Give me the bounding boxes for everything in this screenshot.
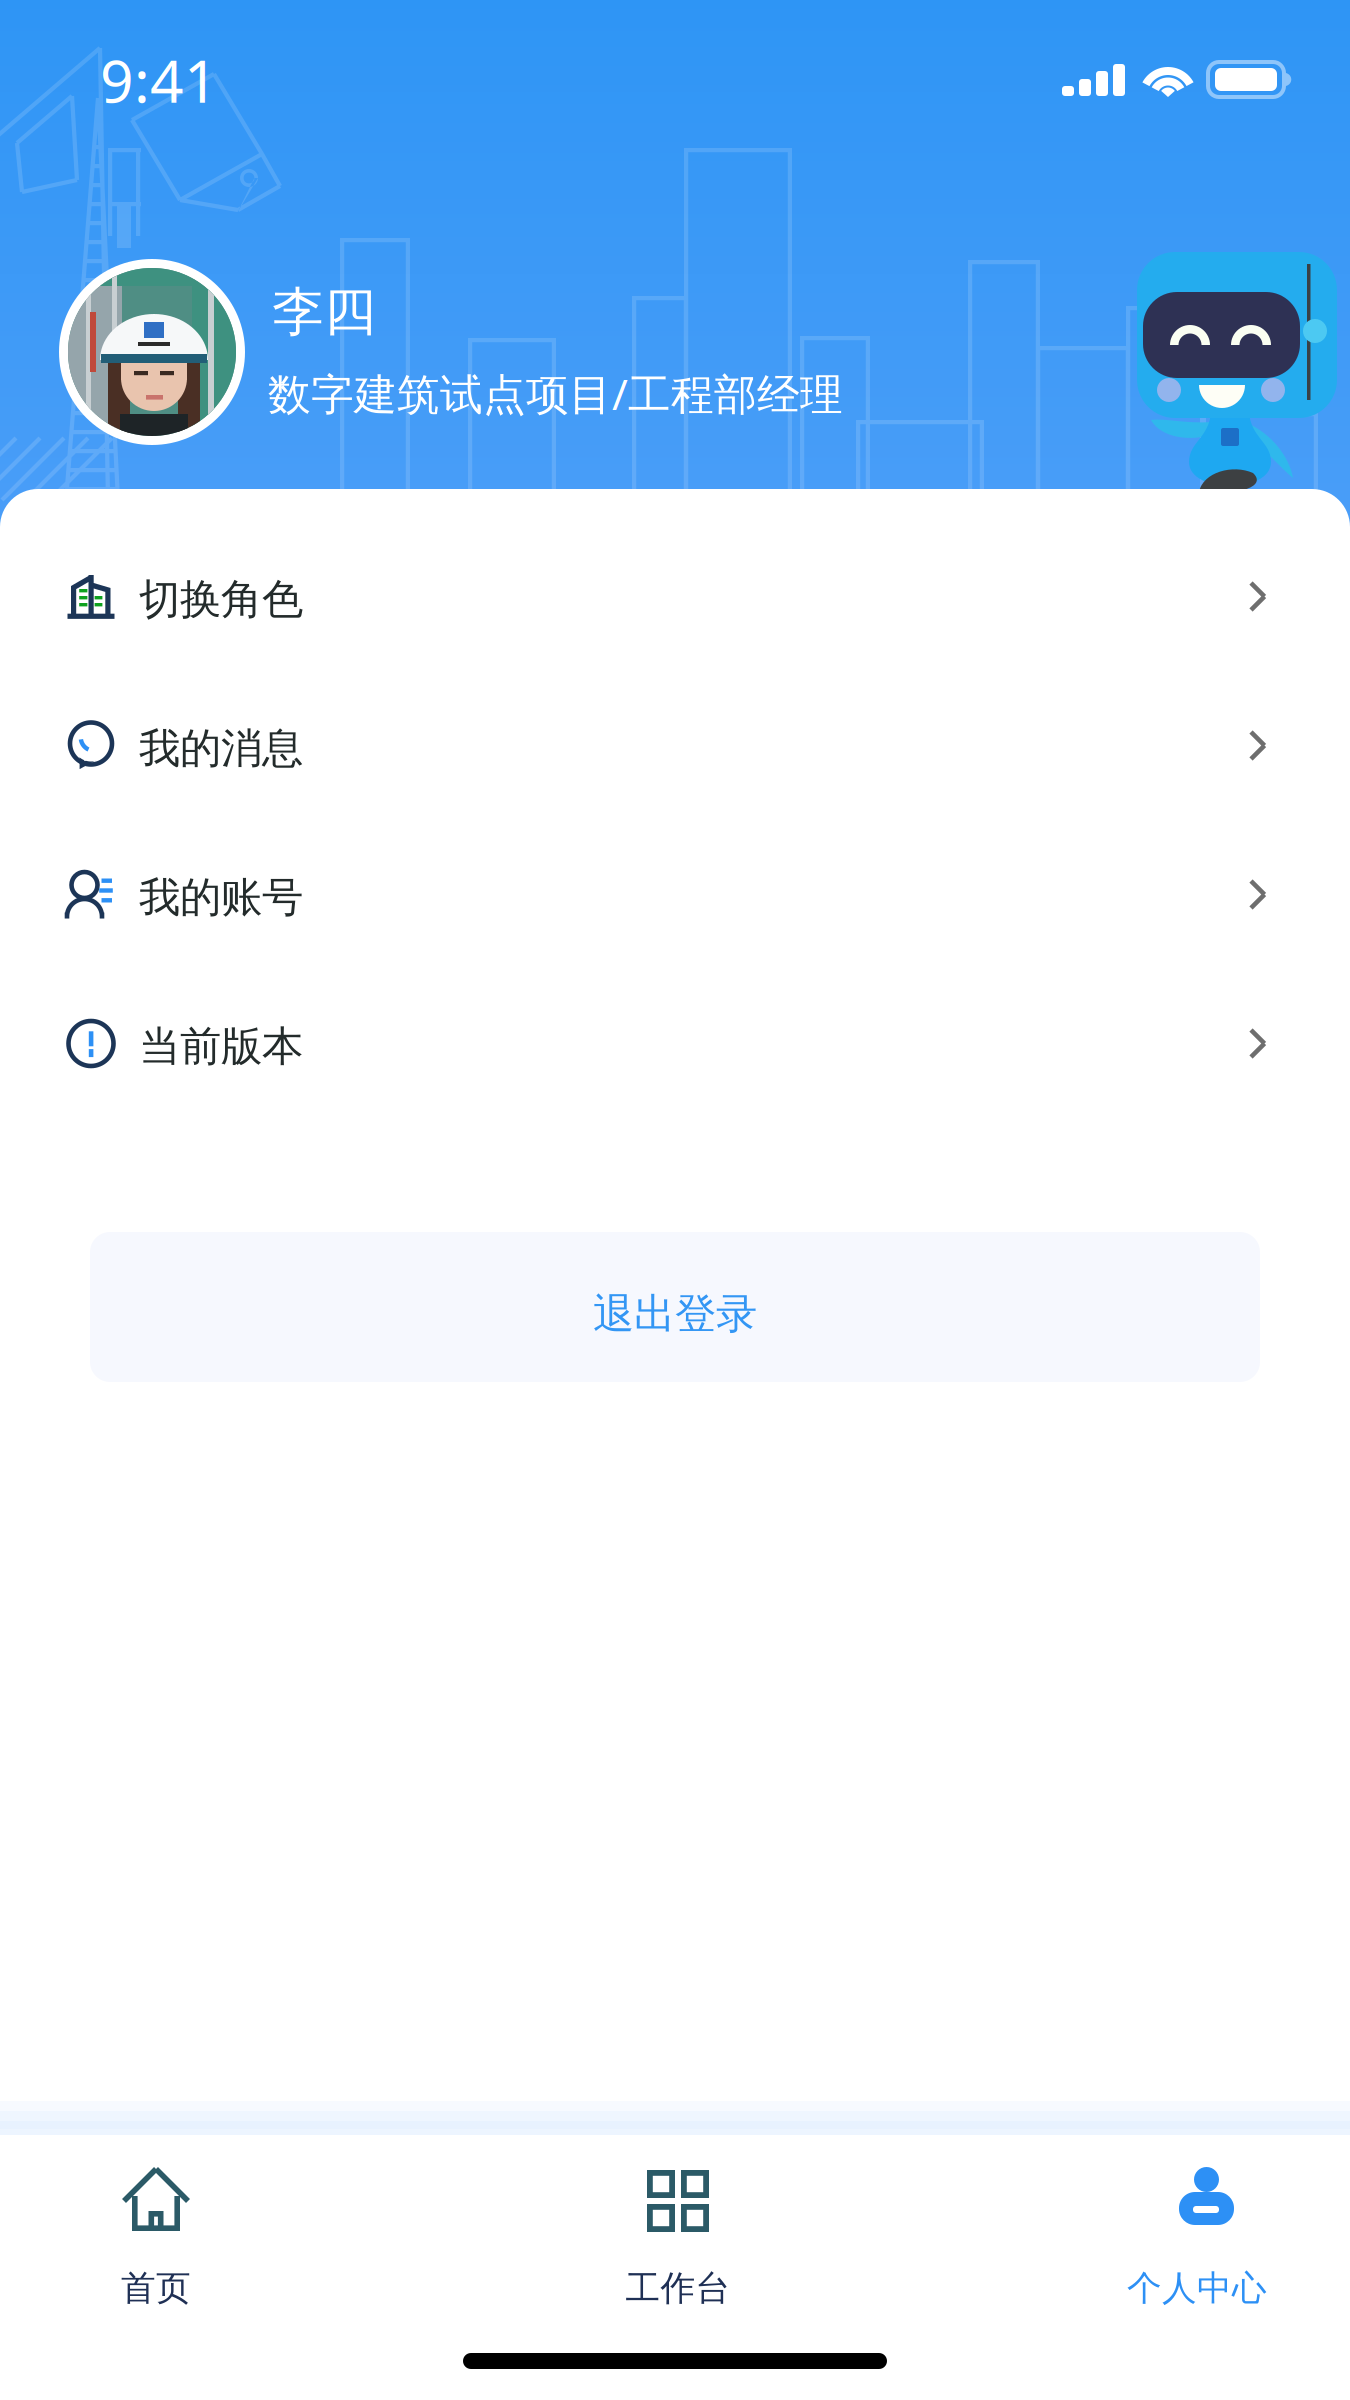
button[interactable]: 退出登录 [90, 1232, 1260, 1382]
button[interactable]: 我的账号 [0, 820, 1350, 969]
staticText: 李四 [272, 280, 376, 344]
staticText: 个人中心 [1127, 2267, 1267, 2310]
staticText: 退出登录 [593, 1289, 757, 1339]
staticText: 9:41 [100, 41, 218, 119]
staticText: 当前版本 [139, 1021, 303, 1072]
staticText: 我的账号 [139, 872, 303, 923]
staticText: 切换角色 [139, 574, 303, 625]
staticText: 数字建筑试点项目/工程部经理 [268, 365, 843, 422]
button[interactable]: 我的消息 [0, 671, 1350, 820]
button[interactable]: 首页 [0, 2135, 312, 2335]
button[interactable]: 当前版本 [0, 969, 1350, 1118]
staticText: 我的消息 [139, 723, 303, 774]
button[interactable]: 切换角色 [0, 522, 1350, 671]
staticText: 首页 [121, 2267, 191, 2310]
staticText: 工作台 [625, 2267, 730, 2310]
button[interactable]: 工作台 [312, 2135, 1044, 2335]
button[interactable]: 个人中心 [1044, 2135, 1350, 2335]
